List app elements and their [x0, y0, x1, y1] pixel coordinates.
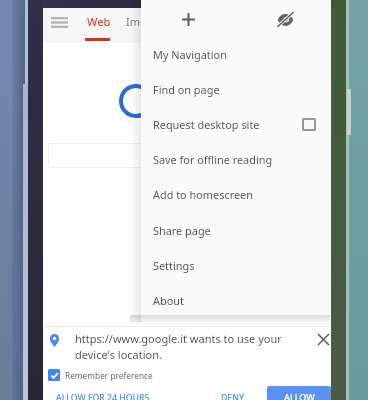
staticText: https://www.google.it wants to use your …	[75, 331, 300, 362]
staticText: About	[153, 293, 184, 308]
button[interactable]: Open navigation	[43, 6, 75, 38]
staticText: Find on page	[153, 82, 220, 97]
button[interactable]: Web	[83, 4, 115, 39]
button[interactable]: Save for offline reading	[141, 142, 330, 177]
button[interactable]: Add to homescreen	[141, 177, 330, 212]
button[interactable]: Remember preference	[48, 369, 153, 381]
button[interactable]: Close	[313, 329, 333, 349]
button[interactable]: New tab	[141, 0, 235, 38]
button[interactable]: Find on page	[141, 72, 330, 107]
button[interactable]: New incognito tab	[235, 0, 330, 38]
button[interactable]	[48, 143, 298, 168]
staticText: DENY	[221, 392, 245, 400]
staticText: Request desktop site	[153, 117, 260, 132]
staticText: Settings	[153, 258, 195, 273]
button[interactable]: Request desktop site	[141, 107, 330, 142]
staticText: My Navigation	[153, 47, 227, 62]
staticText: ALLOW FOR 24 HOURS	[56, 392, 150, 400]
button[interactable]: My Navigation	[141, 37, 330, 72]
button[interactable]: Imm	[126, 4, 166, 39]
button[interactable]: ALLOW	[267, 386, 331, 400]
button[interactable]: Share page	[141, 213, 330, 248]
staticText: Web	[87, 14, 111, 29]
staticText: Share page	[153, 223, 211, 238]
staticText: Remember preference	[65, 370, 153, 381]
button[interactable]: About	[141, 283, 330, 318]
staticText: Save for offline reading	[153, 152, 273, 167]
staticText: Imm	[126, 14, 151, 29]
button[interactable]: DENY	[218, 388, 248, 400]
staticText: Add to homescreen	[153, 187, 253, 202]
button[interactable]: ALLOW FOR 24 HOURS	[53, 388, 153, 400]
button[interactable]: Settings	[141, 248, 330, 283]
staticText: ALLOW	[284, 391, 315, 400]
